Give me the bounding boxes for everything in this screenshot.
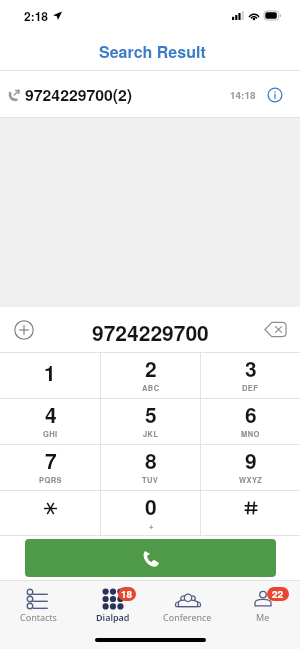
staticText: 18 — [121, 587, 133, 601]
staticText: 5 — [145, 399, 157, 429]
staticText: JKL — [143, 429, 159, 440]
staticText: WXYZ — [239, 475, 263, 486]
button[interactable]: Backspace — [264, 321, 287, 338]
button[interactable]: 22 — [225, 589, 300, 634]
button[interactable]: 7 — [0, 445, 100, 490]
staticText: GHI — [43, 429, 58, 440]
staticText: Dialpad — [96, 611, 130, 623]
button[interactable]: Contacts — [0, 589, 75, 634]
staticText: DEF — [242, 383, 259, 394]
button[interactable]: 1 — [0, 353, 100, 398]
staticText: Me — [256, 611, 270, 623]
staticText: TUV — [142, 475, 159, 486]
button[interactable]: 9724229700(2) — [0, 71, 300, 118]
staticText: 4 — [45, 399, 57, 429]
staticText: PQRS — [39, 475, 62, 486]
staticText: 2 — [145, 353, 157, 383]
staticText: 22 — [272, 587, 284, 601]
staticText: 14:18 — [230, 88, 256, 102]
staticText: Contacts — [20, 611, 57, 623]
staticText: 6 — [245, 399, 257, 429]
button[interactable]: 18 — [75, 589, 150, 634]
staticText: 1 — [44, 357, 56, 387]
button[interactable]: Add contact — [14, 320, 34, 340]
staticText: 9724229700(2) — [25, 83, 133, 106]
staticText: 3 — [245, 353, 257, 383]
staticText: MNO — [241, 429, 260, 440]
button[interactable]: 4 — [0, 399, 100, 444]
staticText: ABC — [142, 383, 160, 394]
button[interactable]: Call — [25, 539, 276, 577]
staticText: Search Result — [99, 40, 206, 63]
button[interactable]: 9 — [201, 445, 300, 490]
staticText: 0 — [145, 491, 157, 521]
button[interactable] — [201, 491, 300, 535]
staticText: Conference — [163, 611, 212, 623]
staticText: + — [149, 521, 154, 532]
staticText: 9724229700 — [92, 317, 209, 347]
button[interactable]: 5 — [101, 399, 200, 444]
button[interactable]: 2 — [101, 353, 200, 398]
button[interactable]: 6 — [201, 399, 300, 444]
staticText: 2:18 — [24, 7, 49, 24]
staticText: 7 — [45, 445, 57, 475]
button[interactable]: 0 — [101, 491, 200, 535]
staticText: 9 — [245, 445, 257, 475]
button[interactable]: 3 — [201, 353, 300, 398]
button[interactable] — [0, 491, 100, 535]
button[interactable]: Conference — [150, 589, 225, 634]
button[interactable]: Call details — [267, 87, 283, 103]
staticText: 8 — [145, 445, 157, 475]
button[interactable]: 8 — [101, 445, 200, 490]
